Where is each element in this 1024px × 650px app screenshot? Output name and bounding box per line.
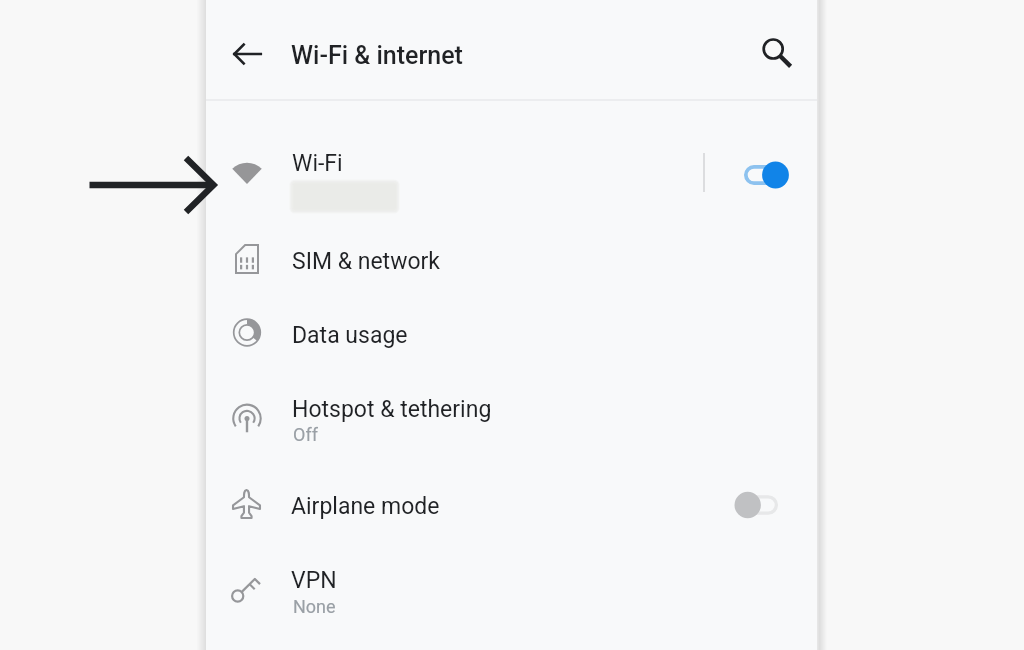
- button[interactable]: Data usage: [206, 299, 817, 372]
- button[interactable]: VPN: [206, 544, 817, 617]
- button[interactable]: Hotspot & tethering: [206, 373, 817, 446]
- button[interactable]: Wi-Fi: [206, 105, 817, 220]
- staticText: Data usage: [292, 322, 408, 349]
- staticText: Airplane mode: [291, 493, 440, 520]
- button[interactable]: Search: [753, 29, 801, 77]
- button[interactable]: Airplane mode, off: [719, 485, 779, 525]
- staticText: Off: [293, 424, 318, 445]
- button[interactable]: Navigate up: [223, 30, 271, 78]
- staticText: Wi-Fi: [292, 150, 343, 177]
- staticText: Hotspot & tethering: [292, 396, 492, 423]
- button[interactable]: Wi-Fi, on: [735, 155, 795, 195]
- button[interactable]: SIM & network: [206, 226, 817, 299]
- staticText: SIM & network: [292, 248, 440, 275]
- staticText: Wi-Fi & internet: [291, 41, 463, 70]
- staticText: None: [293, 596, 336, 617]
- button[interactable]: Airplane mode: [206, 470, 817, 543]
- staticText: VPN: [291, 567, 337, 594]
